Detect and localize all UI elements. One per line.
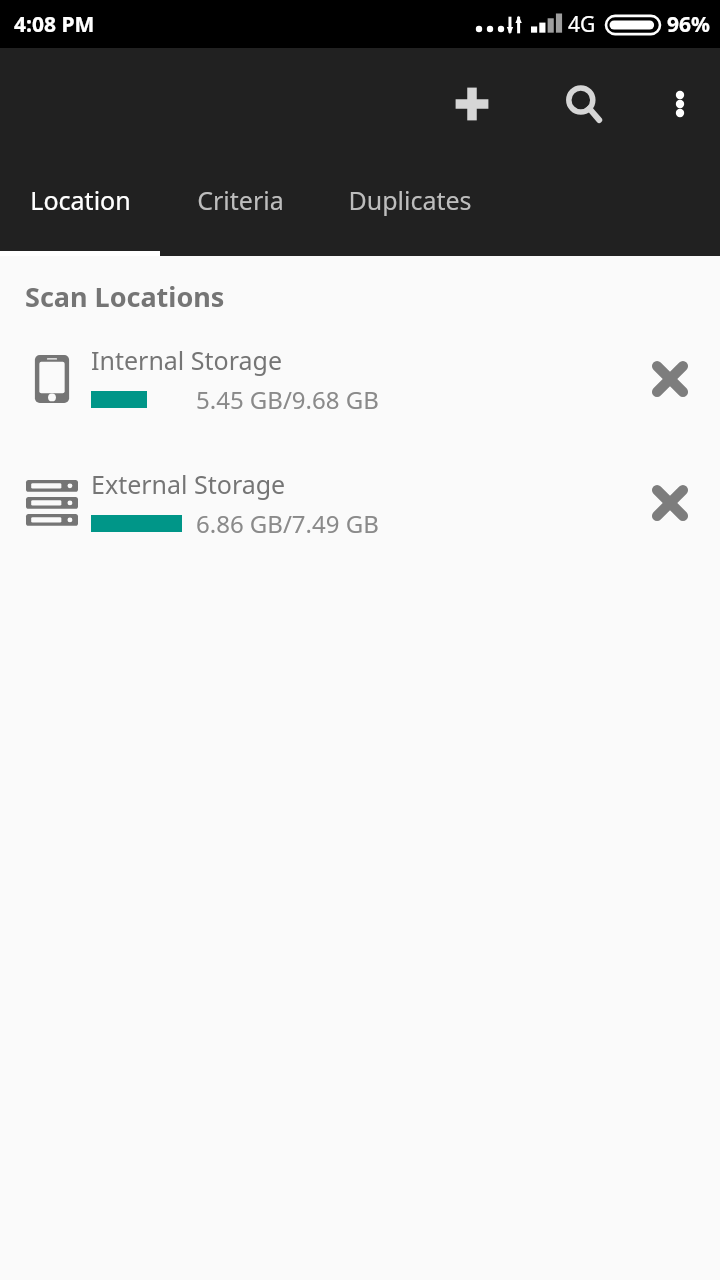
staticText: Scan Locations bbox=[25, 278, 225, 315]
staticText: 4:08 PM bbox=[14, 10, 95, 39]
button[interactable]: Remove Internal Storage bbox=[632, 341, 708, 417]
staticText: Location bbox=[30, 183, 131, 217]
staticText: 6.86 GB/7.49 GB bbox=[196, 507, 379, 540]
staticText: Criteria bbox=[197, 183, 284, 217]
staticText: External Storage bbox=[91, 467, 286, 501]
button[interactable]: Location bbox=[0, 160, 160, 256]
button[interactable]: Criteria bbox=[160, 160, 320, 256]
button[interactable]: More options bbox=[648, 72, 712, 136]
staticText: 4G bbox=[568, 10, 596, 39]
button[interactable]: Remove External Storage bbox=[632, 465, 708, 541]
button[interactable]: External Storage bbox=[0, 465, 720, 541]
button[interactable]: Search bbox=[548, 68, 620, 140]
staticText: 96% bbox=[667, 10, 710, 39]
staticText: 5.45 GB/9.68 GB bbox=[196, 383, 379, 416]
staticText: Duplicates bbox=[348, 183, 472, 217]
button[interactable]: Add location bbox=[436, 68, 508, 140]
button[interactable]: Internal Storage bbox=[0, 341, 720, 417]
staticText: Internal Storage bbox=[91, 343, 283, 377]
button[interactable]: Duplicates bbox=[320, 160, 500, 256]
